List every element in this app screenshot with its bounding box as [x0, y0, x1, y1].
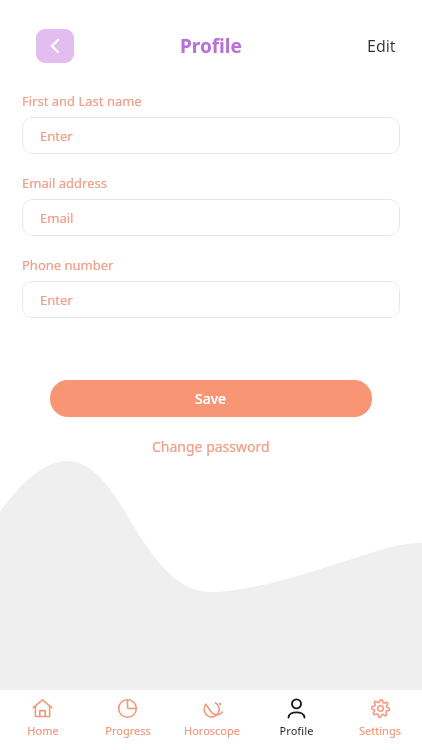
button[interactable]: Edit: [361, 29, 402, 63]
staticText: Progress: [105, 723, 151, 738]
staticText: Profile: [279, 723, 314, 738]
button[interactable]: Email: [22, 199, 400, 236]
button[interactable]: Save: [50, 380, 372, 417]
button[interactable]: Back: [36, 29, 74, 63]
button[interactable]: Change password: [142, 433, 280, 460]
button[interactable]: Settings: [338, 690, 422, 738]
staticText: Profile: [180, 33, 242, 59]
button[interactable]: Profile: [254, 690, 338, 738]
button[interactable]: Enter: [22, 281, 400, 318]
staticText: Settings: [359, 723, 401, 738]
staticText: Email: [40, 209, 74, 227]
staticText: Email address: [22, 174, 107, 192]
staticText: Phone number: [22, 256, 114, 274]
button[interactable]: Horoscope: [170, 690, 254, 738]
staticText: Enter: [40, 127, 73, 145]
staticText: Save: [195, 389, 227, 408]
button[interactable]: Progress: [85, 690, 170, 738]
button[interactable]: Home: [0, 690, 85, 738]
staticText: Edit: [367, 35, 396, 57]
staticText: Enter: [40, 291, 73, 309]
staticText: Change password: [152, 437, 270, 456]
button[interactable]: Enter: [22, 117, 400, 154]
staticText: Home: [27, 723, 59, 738]
staticText: First and Last name: [22, 92, 142, 110]
staticText: Horoscope: [184, 723, 240, 738]
